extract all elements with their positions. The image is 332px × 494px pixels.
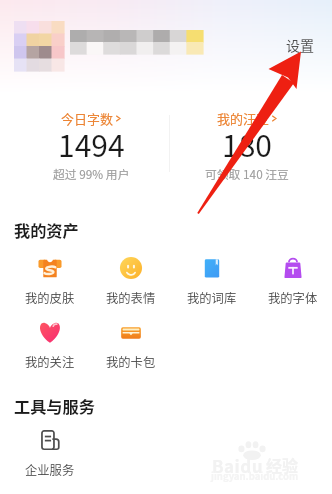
staticText: 设置: [286, 35, 314, 55]
staticText: 我的卡包: [106, 353, 156, 371]
button[interactable]: 我的皮肤: [9, 256, 90, 307]
staticText: 工具与服务: [14, 394, 95, 417]
button[interactable]: 我的卡包: [90, 320, 171, 371]
staticText: 180: [222, 122, 272, 165]
staticText: 我的表情: [106, 289, 156, 307]
staticText: 我的皮肤: [25, 289, 75, 307]
button[interactable]: 我的汪豆: [169, 91, 325, 196]
staticText: 可领取 140 汪豆: [205, 165, 289, 182]
staticText: 超过 99% 用户: [53, 165, 130, 182]
staticText: 我的资产: [14, 218, 79, 241]
button[interactable]: [14, 21, 64, 69]
staticText: 我的字体: [268, 289, 318, 307]
staticText: 企业服务: [25, 461, 75, 479]
button[interactable]: 我的关注: [9, 320, 90, 371]
button[interactable]: 我的词库: [171, 256, 252, 307]
button[interactable]: 今日字数: [14, 91, 169, 196]
staticText: 我的汪豆: [217, 109, 270, 128]
staticText: jingyan.baidu.com: [211, 469, 299, 483]
staticText: 经验: [266, 453, 299, 476]
button[interactable]: 设置: [282, 30, 318, 60]
staticText: 我的词库: [187, 289, 237, 307]
staticText: 我的关注: [25, 353, 75, 371]
staticText: Baidu: [212, 453, 264, 478]
staticText: 1494: [58, 122, 125, 165]
staticText: 今日字数: [61, 109, 114, 128]
button[interactable]: 我的表情: [90, 256, 171, 307]
button[interactable]: 我的字体: [252, 256, 332, 307]
button[interactable]: 企业服务: [9, 428, 90, 479]
